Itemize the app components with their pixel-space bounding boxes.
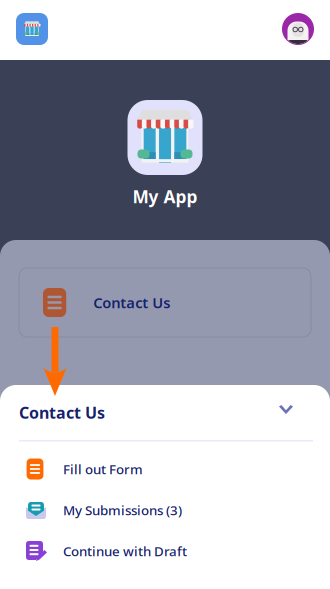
button[interactable]: Contact Us — [0, 268, 330, 337]
button[interactable]: Store — [16, 13, 48, 45]
button[interactable]: Fill out Form — [0, 448, 330, 489]
staticText: Continue with Draft — [63, 542, 187, 560]
button[interactable]: Continue with Draft — [0, 530, 330, 571]
staticText: Contact Us — [19, 402, 105, 423]
staticText: Fill out Form — [63, 460, 143, 478]
button[interactable]: Contact Us — [0, 385, 330, 440]
staticText: My App — [132, 185, 197, 208]
staticText: Contact Us — [93, 293, 170, 312]
staticText: My Submissions (3) — [63, 501, 182, 519]
button[interactable]: My Submissions (3) — [0, 489, 330, 530]
button[interactable]: Profile — [282, 13, 314, 45]
